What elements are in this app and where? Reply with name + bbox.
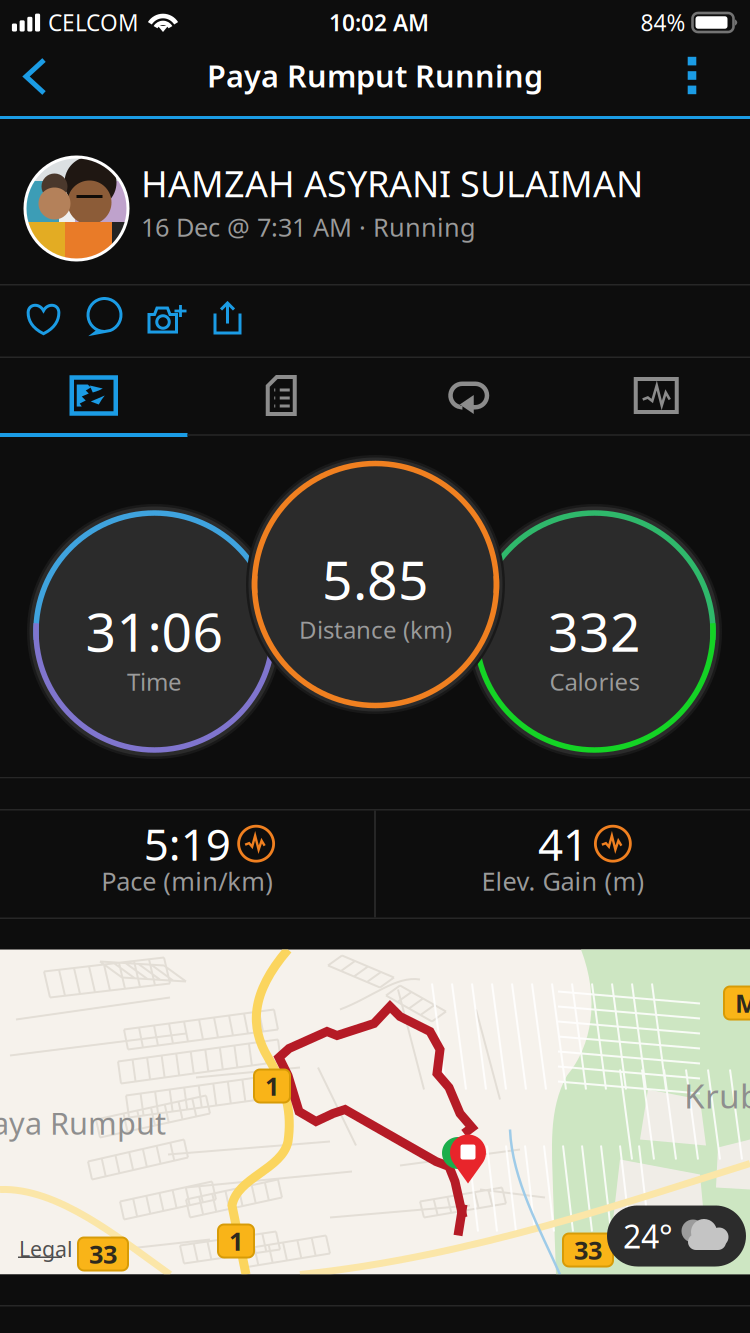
staticText: CELCOM [48, 7, 139, 37]
staticText: Krub [684, 1073, 750, 1118]
staticText: 10:02 AM [329, 7, 429, 37]
staticText: Distance (km) [299, 613, 452, 645]
staticText: 1 [229, 1224, 243, 1258]
staticText: 1 [265, 1069, 279, 1103]
staticText: 16 Dec @ 7:31 AM · Running [141, 210, 476, 244]
staticText: 332 [548, 596, 641, 666]
staticText: Legal [19, 1234, 73, 1263]
staticText: 33 [574, 1233, 602, 1267]
button[interactable]: Share [196, 285, 257, 356]
staticText: 33 [89, 1237, 117, 1271]
button[interactable]: Laps [375, 358, 562, 433]
staticText: Paya Rumput Running [207, 55, 543, 96]
button[interactable]: Back [6, 45, 64, 116]
staticText: HAMZAH ASYRANI SULAIMAN [141, 159, 643, 207]
staticText: Elev. Gain (m) [481, 864, 644, 898]
button[interactable]: Overview map [0, 358, 187, 433]
staticText: Calories [549, 665, 639, 697]
button[interactable]: Like [13, 285, 74, 356]
staticText: 5.85 [322, 544, 429, 614]
button[interactable]: Comment [74, 285, 135, 356]
staticText: Pace (min/km) [101, 864, 273, 898]
staticText: 84% [640, 7, 685, 37]
button[interactable]: More options [663, 45, 721, 116]
staticText: 41 [538, 814, 588, 873]
staticText: 31:06 [85, 596, 223, 666]
button[interactable]: Details [187, 358, 375, 433]
staticText: Time [127, 665, 182, 697]
staticText: aya Rumput [0, 1102, 166, 1143]
button[interactable]: Add photo [135, 285, 196, 356]
staticText: 5:19 [144, 814, 231, 873]
staticText: 24° [623, 1215, 673, 1257]
button[interactable]: Charts [562, 358, 750, 433]
staticText: M [735, 986, 750, 1020]
